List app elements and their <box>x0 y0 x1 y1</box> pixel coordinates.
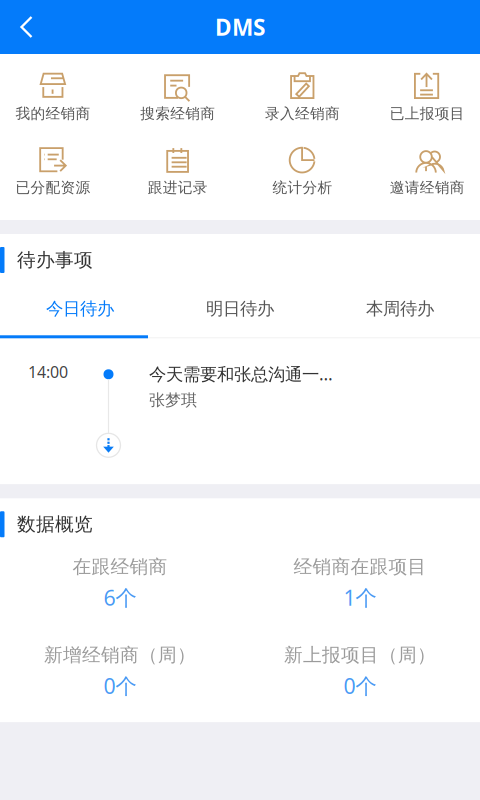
staticText: 待办事项 <box>17 248 93 271</box>
staticText: 0个 <box>103 671 136 700</box>
button[interactable]: 跟进记录 <box>115 140 240 202</box>
button[interactable]: 明日待办 <box>160 297 320 320</box>
button[interactable]: 已上报项目 <box>365 66 480 128</box>
button[interactable]: 在跟经销商 <box>0 555 240 612</box>
button[interactable]: 搜索经销商 <box>115 66 240 128</box>
staticText: 已分配资源 <box>15 178 90 196</box>
staticText: 统计分析 <box>272 178 332 196</box>
staticText: 新上报项目（周） <box>284 643 436 666</box>
staticText: 1个 <box>343 583 376 611</box>
button[interactable]: 返回 <box>0 5 45 48</box>
staticText: 明日待办 <box>206 298 274 319</box>
button[interactable]: 录入经销商 <box>240 66 365 128</box>
staticText: 搜索经销商 <box>140 104 215 122</box>
button[interactable]: 邀请经销商 <box>365 140 480 202</box>
staticText: 今天需要和张总沟通一… <box>149 362 333 385</box>
button[interactable]: 新上报项目（周） <box>240 643 480 700</box>
button[interactable]: 今日待办 <box>0 297 160 320</box>
staticText: 6个 <box>103 583 136 611</box>
button[interactable]: 我的经销商 <box>0 66 115 128</box>
button[interactable]: 已分配资源 <box>0 140 115 202</box>
staticText: 0个 <box>343 671 376 700</box>
button[interactable]: 统计分析 <box>240 140 365 202</box>
button[interactable]: 14:00 <box>0 338 480 484</box>
staticText: 14:00 <box>28 361 68 382</box>
staticText: 我的经销商 <box>15 104 90 122</box>
staticText: 今日待办 <box>46 298 114 319</box>
staticText: 跟进记录 <box>148 178 208 196</box>
staticText: 录入经销商 <box>265 104 340 122</box>
staticText: 本周待办 <box>366 298 434 319</box>
staticText: 张梦琪 <box>149 390 197 410</box>
staticText: 在跟经销商 <box>72 555 167 578</box>
staticText: 新增经销商（周） <box>44 643 196 666</box>
button[interactable]: 本周待办 <box>320 297 480 320</box>
staticText: DMS <box>215 12 265 42</box>
staticText: 已上报项目 <box>390 104 465 122</box>
staticText: 经销商在跟项目 <box>293 555 426 578</box>
staticText: 数据概览 <box>17 513 93 536</box>
button[interactable]: 新增经销商（周） <box>0 643 240 700</box>
button[interactable]: 经销商在跟项目 <box>240 555 480 612</box>
staticText: 邀请经销商 <box>390 178 465 196</box>
